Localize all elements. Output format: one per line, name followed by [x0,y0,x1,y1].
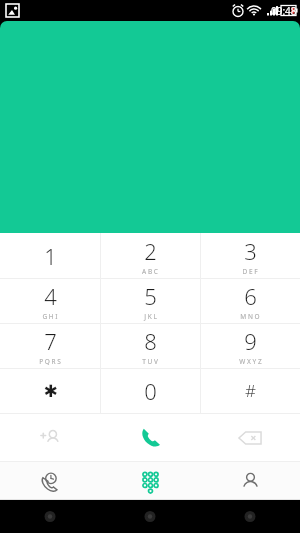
button[interactable]: 2 [100,233,200,278]
button[interactable] [0,21,300,233]
staticText: A B C [142,267,158,276]
button[interactable]: Recents [0,462,100,500]
staticText: 4 [44,281,57,311]
button[interactable]: Backspace [200,414,300,461]
staticText: P Q R S [39,357,61,366]
staticText: D E F [242,267,258,276]
staticText: 8 [144,326,157,356]
button[interactable]: 8 [100,323,200,368]
staticText: M N O [240,312,260,321]
button[interactable]: 7 [0,323,100,368]
button[interactable]: Call [100,414,200,461]
button[interactable]: 1 [0,233,100,278]
button[interactable]: 5 [100,278,200,323]
staticText: W X Y Z [239,357,262,366]
button[interactable]: ✱ [0,368,100,413]
button[interactable]: 3 [200,233,300,278]
staticText: T U V [142,357,158,366]
staticText: J K L [144,312,157,321]
staticText: G H I [42,312,58,321]
staticText: 0 [144,376,157,406]
button[interactable]: # [200,368,300,413]
staticText: 3 [244,236,257,266]
staticText: 2 [144,236,157,266]
staticText: 1 [44,241,57,271]
staticText: # [245,379,256,402]
button[interactable]: Add contact [0,414,100,461]
staticText: ✱ [43,381,58,401]
button[interactable]: Contacts [200,462,300,500]
staticText: 5 [144,281,157,311]
staticText: 6 [244,281,257,311]
staticText: 09:48 [271,4,297,18]
button[interactable]: Dialpad [100,462,200,500]
staticText: 7 [44,326,57,356]
button[interactable]: 0 [100,368,200,413]
button[interactable]: 9 [200,323,300,368]
staticText: 9 [244,326,257,356]
button[interactable]: 6 [200,278,300,323]
button[interactable]: 4 [0,278,100,323]
